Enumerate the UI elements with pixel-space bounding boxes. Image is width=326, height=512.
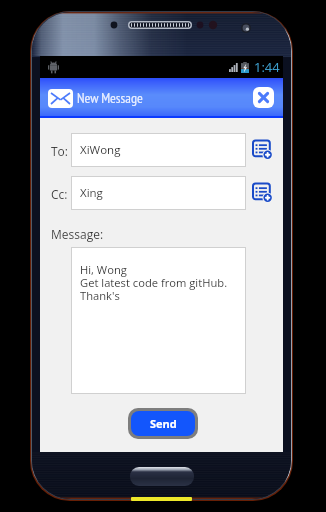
button[interactable]: Xing	[72, 177, 245, 209]
staticText: Message:	[51, 226, 104, 242]
button[interactable]: Pick contact	[252, 182, 273, 204]
staticText: 1:44	[254, 58, 280, 76]
staticText: Send	[150, 416, 177, 431]
staticText: Hi, Wong Get latest code from gitHub. Th…	[80, 262, 228, 303]
staticText: To:	[51, 143, 68, 159]
button[interactable]: Close	[253, 87, 274, 108]
button[interactable]: Hi, Wong Get latest code from gitHub. Th…	[72, 248, 245, 393]
button[interactable]: Pick contact	[252, 139, 273, 161]
staticText: Cc:	[51, 186, 68, 202]
staticText: Xing	[80, 185, 103, 201]
staticText: XiWong	[80, 142, 121, 158]
button[interactable]: Send	[131, 411, 195, 436]
button[interactable]: Home	[130, 467, 194, 486]
staticText: New Message	[77, 89, 143, 107]
button[interactable]: XiWong	[72, 134, 245, 166]
